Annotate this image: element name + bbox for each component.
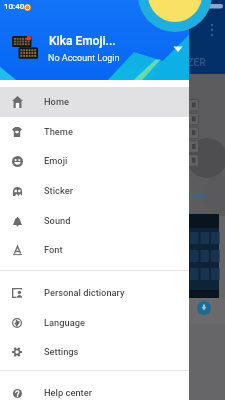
staticText: Language [44,317,85,328]
button[interactable]: Sticker [0,176,189,206]
staticText: Personal dictionary [44,287,125,298]
staticText: ORE [188,192,206,203]
button[interactable]: Font [0,235,189,265]
staticText: Font [44,244,63,255]
staticText: Emoji [44,155,68,166]
staticText: Sound [44,215,71,226]
staticText: Help center [44,387,92,398]
button[interactable]: Home [0,87,189,117]
staticText: ZER [187,56,206,68]
button[interactable]: Personal dictionary [0,278,189,308]
staticText: Kika Emoji... [49,34,116,48]
staticText: 10:40 [4,2,25,11]
staticText: Theme [44,126,73,137]
button[interactable]: Sound [0,206,189,236]
button[interactable]: Emoji [0,146,189,176]
button[interactable]: Help center [0,378,189,400]
button[interactable]: Settings [0,337,189,367]
staticText: Home [44,96,69,107]
other: Account [12,36,38,59]
staticText: Sticker [44,185,73,196]
button[interactable]: Language [0,308,189,338]
button[interactable]: Theme [0,117,189,147]
staticText: No Account Login [48,53,120,64]
staticText: Settings [44,346,79,357]
